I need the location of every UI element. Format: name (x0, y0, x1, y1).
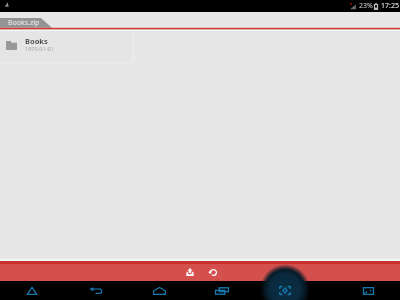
staticText: Books.zip (8, 18, 40, 28)
button[interactable]: Books.zip (0, 12, 52, 31)
button[interactable]: Undo (201, 264, 224, 281)
staticText: Books (25, 36, 48, 46)
staticText: 1970-01-01 (25, 45, 54, 52)
button[interactable]: Multi window (352, 281, 384, 300)
button[interactable]: Recent apps (206, 281, 238, 300)
button[interactable]: Navigate up (16, 281, 48, 300)
button[interactable]: Home (143, 281, 175, 300)
button[interactable]: Back (79, 281, 111, 300)
staticText: 17:25 (381, 1, 399, 11)
button[interactable]: Books (0, 31, 133, 63)
staticText: 23% (359, 1, 373, 11)
button[interactable]: Capture screen (260, 281, 310, 300)
button[interactable]: Extract (178, 264, 201, 281)
